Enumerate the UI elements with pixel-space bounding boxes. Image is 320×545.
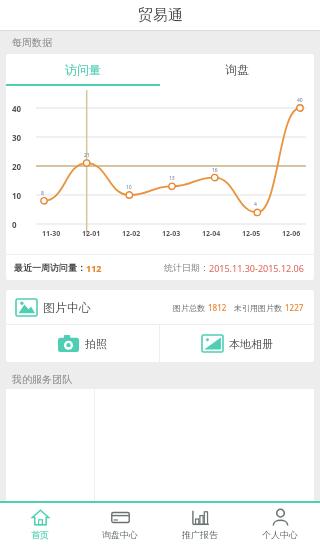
staticText: 访问量 xyxy=(65,62,101,77)
button[interactable]: 图片中心 xyxy=(6,290,314,324)
staticText: 40 xyxy=(12,103,22,114)
staticText: 我的服务团队 xyxy=(12,373,72,386)
staticText: 16 xyxy=(212,167,218,174)
staticText: 询盘中心 xyxy=(102,529,138,540)
staticText: 12-02 xyxy=(122,229,141,239)
button[interactable]: 询盘中心 xyxy=(80,503,160,545)
staticText: 4 xyxy=(254,201,257,208)
button[interactable]: 个人中心 xyxy=(240,503,320,545)
staticText: 40 xyxy=(297,97,303,104)
button[interactable]: 首页 xyxy=(0,503,80,545)
staticText: 推广报告 xyxy=(182,529,218,540)
button[interactable]: 推广报告 xyxy=(160,503,240,545)
button[interactable]: 拍照 xyxy=(6,325,159,362)
staticText: 图片中心 xyxy=(43,300,91,315)
staticText: 图片总数 xyxy=(173,302,208,313)
staticText: 最近一周访问量： xyxy=(14,262,86,273)
staticText: 11-30 xyxy=(42,229,61,239)
staticText: 询盘 xyxy=(225,62,249,77)
staticText: 12-03 xyxy=(162,229,181,239)
button[interactable]: 询盘 xyxy=(160,54,314,84)
staticText: 统计日期： xyxy=(164,262,209,273)
staticText: 未引用图片数 xyxy=(234,302,285,313)
staticText: 10 xyxy=(12,190,22,201)
staticText: 个人中心 xyxy=(262,529,298,540)
staticText: 12-06 xyxy=(282,229,301,239)
staticText: 12-04 xyxy=(202,229,221,239)
button[interactable]: 本地相册 xyxy=(160,325,314,362)
staticText: 21 xyxy=(84,152,90,159)
staticText: 拍照 xyxy=(85,337,107,351)
staticText: 每周数据 xyxy=(12,36,52,49)
button[interactable]: 访问量 xyxy=(6,54,160,84)
staticText: 112 xyxy=(86,262,102,274)
staticText: 8 xyxy=(41,190,44,197)
staticText: 10 xyxy=(126,184,132,191)
staticText: 本地相册 xyxy=(229,337,273,351)
staticText: 20 xyxy=(12,161,22,172)
staticText: 30 xyxy=(12,132,22,143)
staticText: 1812 xyxy=(208,302,227,313)
staticText: 12-05 xyxy=(242,229,261,239)
staticText: 贸易通 xyxy=(138,6,183,25)
staticText: 12-01 xyxy=(82,229,101,239)
staticText: 首页 xyxy=(31,529,49,540)
staticText: 0 xyxy=(12,219,17,230)
staticText: 13 xyxy=(169,175,175,182)
staticText: 1227 xyxy=(285,302,304,313)
staticText: 2015.11.30-2015.12.06 xyxy=(209,262,304,274)
